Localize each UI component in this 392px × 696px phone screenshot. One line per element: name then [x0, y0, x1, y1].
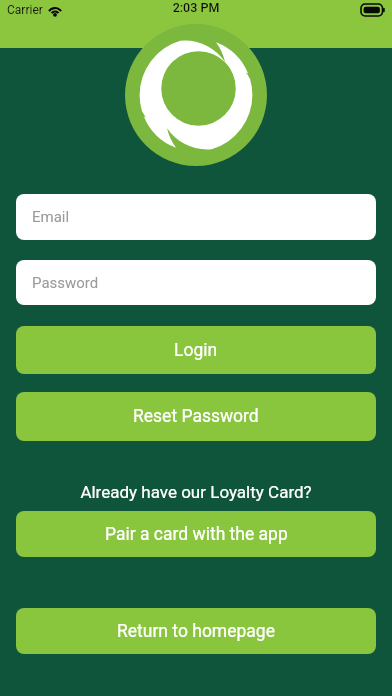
button[interactable]: Login [16, 326, 376, 374]
button[interactable]: Return to homepage [16, 608, 376, 654]
button[interactable]: Reset Password [16, 392, 376, 441]
staticText: Carrier [7, 3, 43, 17]
staticText: Reset Password [133, 406, 259, 427]
staticText: Login [174, 340, 218, 361]
staticText: 2:03 PM [0, 0, 392, 20]
staticText: Pair a card with the app [105, 524, 288, 545]
staticText: Email [32, 208, 70, 226]
button[interactable]: Pair a card with the app [16, 511, 376, 557]
button[interactable]: Password [16, 260, 376, 305]
staticText: Password [32, 274, 99, 292]
button[interactable]: Email [16, 194, 376, 240]
staticText: Return to homepage [117, 621, 275, 642]
staticText: Already have our Loyalty Card? [0, 482, 392, 502]
